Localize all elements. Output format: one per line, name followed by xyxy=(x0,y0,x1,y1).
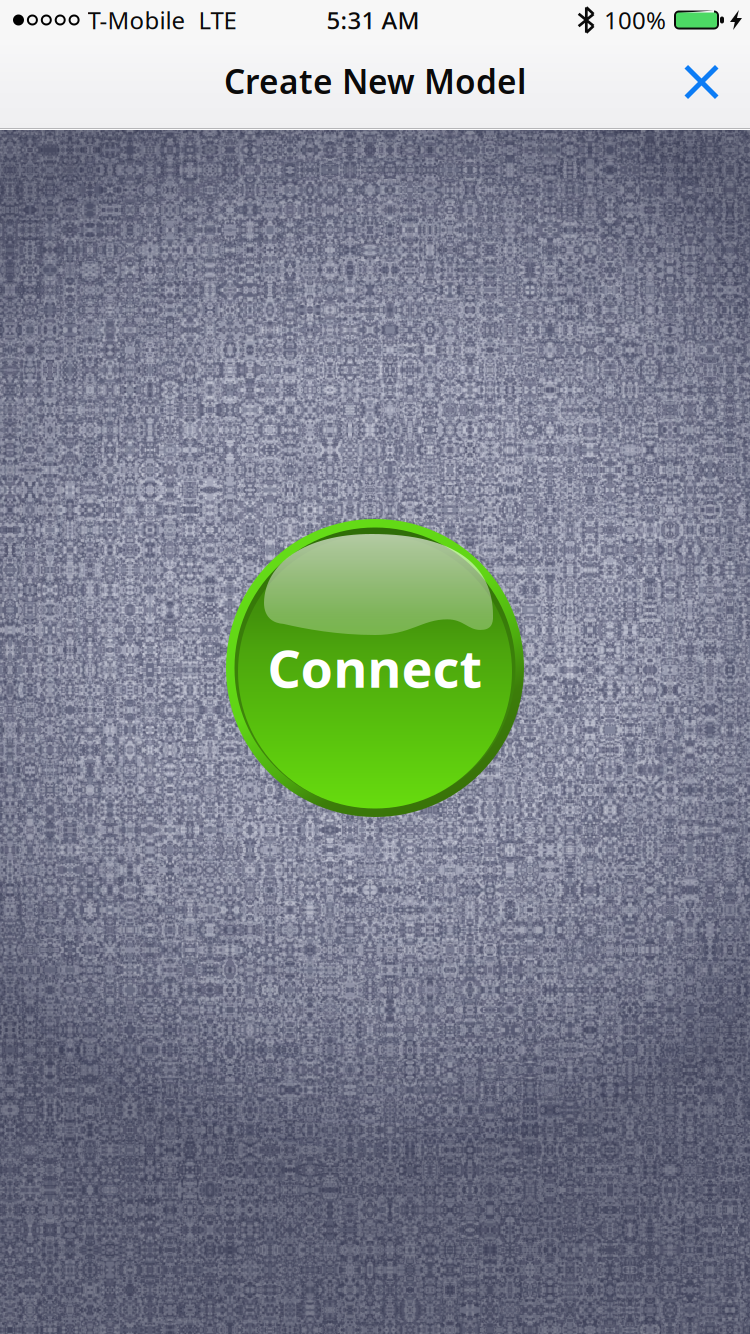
button[interactable]: Close xyxy=(650,40,750,130)
staticText: 100% xyxy=(604,4,666,36)
staticText: LTE xyxy=(199,4,237,36)
staticText: T-Mobile xyxy=(88,4,186,36)
button[interactable]: Connect xyxy=(225,518,525,818)
staticText: 5:31 AM xyxy=(326,4,419,36)
staticText: Create New Model xyxy=(224,59,526,103)
staticText: Connect xyxy=(267,633,482,702)
